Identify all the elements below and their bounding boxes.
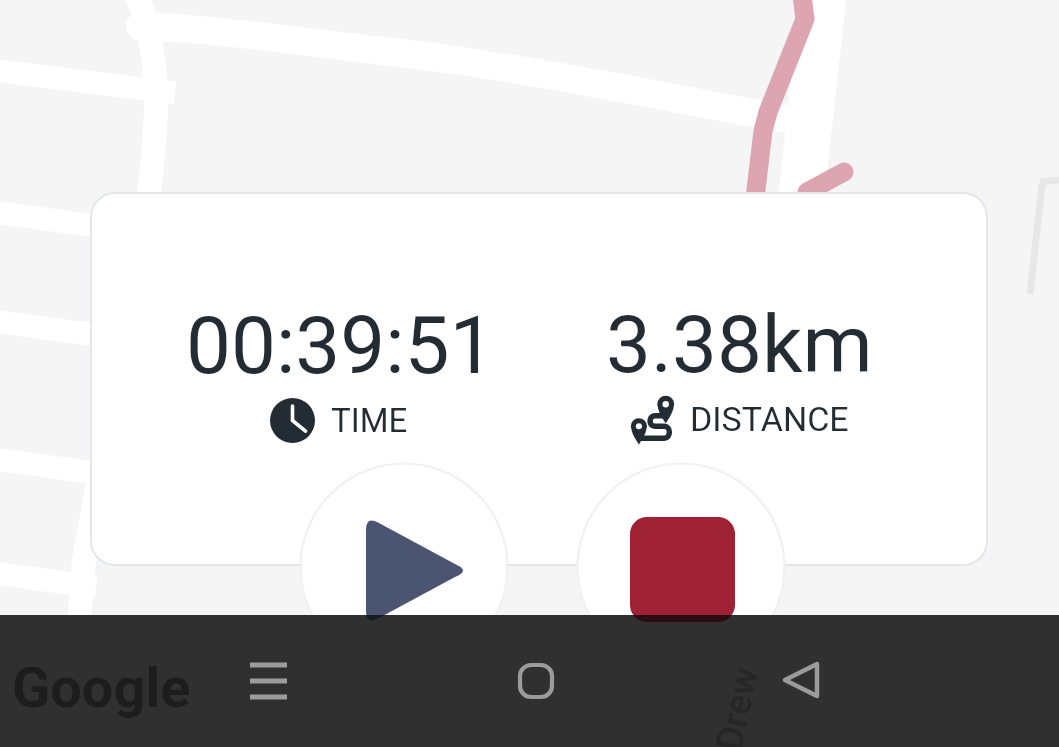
button[interactable]: [91, 193, 987, 565]
staticText: 00:39:51: [186, 299, 495, 393]
button[interactable]: Resume run: [301, 464, 507, 670]
button[interactable]: Recent apps: [238, 651, 298, 711]
staticText: TIME: [331, 401, 408, 440]
button[interactable]: Stop run: [578, 464, 784, 670]
button[interactable]: Back: [771, 650, 831, 710]
staticText: DISTANCE: [690, 399, 849, 439]
button[interactable]: Home: [506, 651, 566, 711]
staticText: 3.38km: [606, 298, 873, 392]
staticText: Google: [12, 655, 191, 721]
staticText: Drew: [708, 663, 766, 747]
